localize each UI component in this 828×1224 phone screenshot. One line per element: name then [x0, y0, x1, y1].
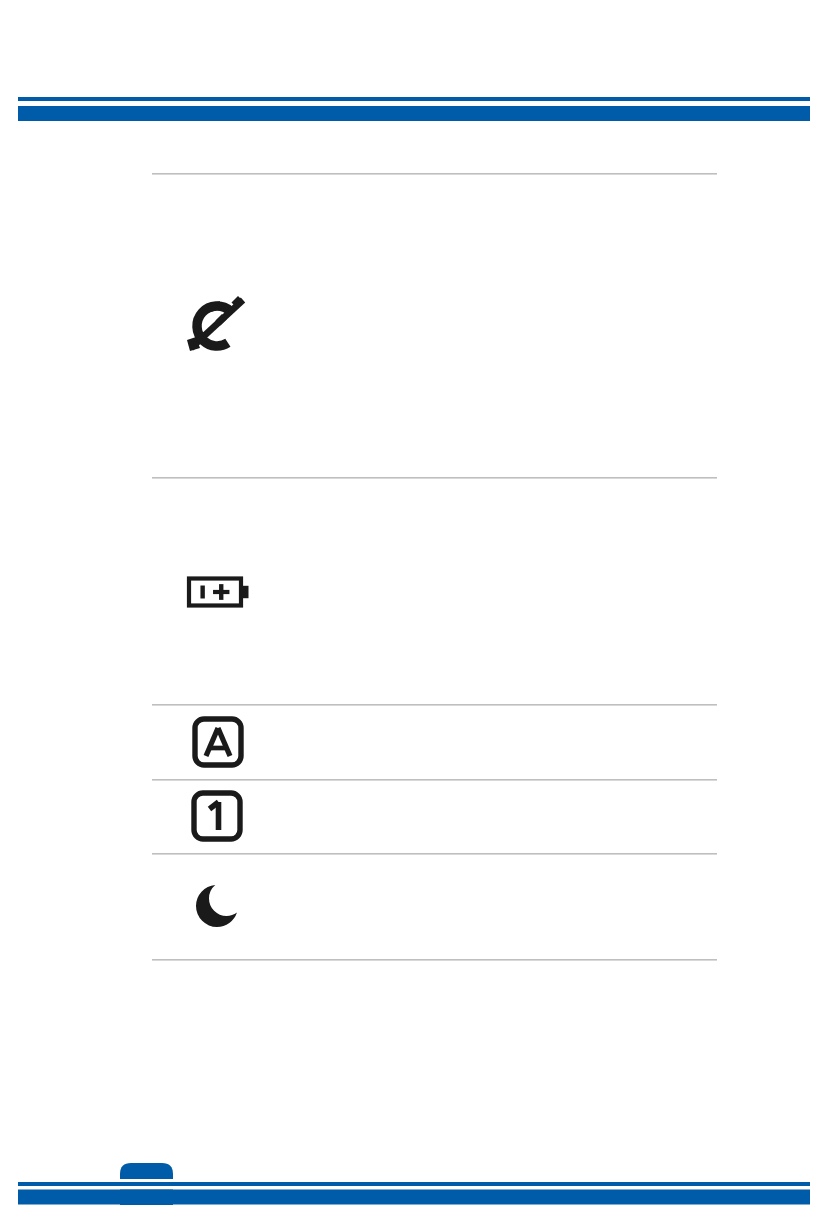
button[interactable]: Sleep mode: [196, 884, 242, 930]
button[interactable]: Caps lock: [192, 718, 246, 770]
button[interactable]: Ringer muted: [190, 300, 246, 356]
button[interactable]: Battery status: [188, 576, 250, 610]
button[interactable]: Number lock: [192, 792, 244, 842]
